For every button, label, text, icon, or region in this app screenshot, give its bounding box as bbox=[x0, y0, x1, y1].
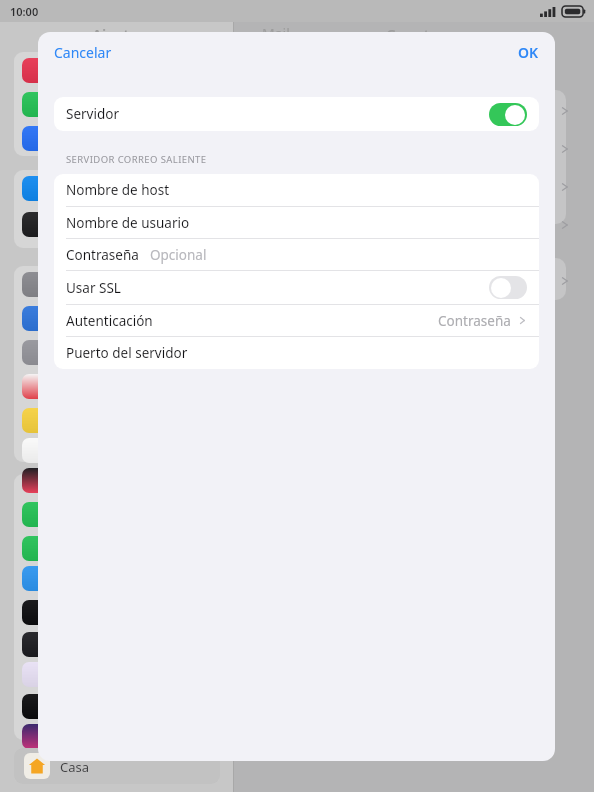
button[interactable]: Servidor bbox=[54, 97, 539, 131]
button[interactable]: Activado bbox=[489, 103, 527, 126]
staticText: Contraseña bbox=[66, 246, 139, 264]
button[interactable]: Nombre de host bbox=[54, 174, 539, 206]
staticText: Nombre de usuario bbox=[66, 214, 190, 232]
staticText: Puerto del servidor bbox=[66, 344, 188, 362]
button[interactable]: Nombre de usuario bbox=[54, 206, 539, 238]
staticText: Casa bbox=[60, 758, 90, 776]
staticText: OK bbox=[518, 43, 539, 62]
button[interactable]: Contraseña bbox=[54, 238, 539, 270]
staticText: Cancelar bbox=[54, 43, 112, 62]
button[interactable]: Usar SSL bbox=[54, 270, 539, 304]
button[interactable]: Desactivado bbox=[489, 276, 527, 299]
staticText: 10:00 bbox=[10, 4, 39, 19]
button[interactable]: Autenticación bbox=[54, 304, 539, 336]
staticText: Ajustes bbox=[92, 24, 146, 44]
staticText: Contraseña bbox=[438, 312, 511, 330]
button[interactable]: Puerto del servidor bbox=[54, 336, 539, 369]
staticText: Autenticación bbox=[66, 312, 153, 330]
staticText: Servidor bbox=[66, 105, 119, 123]
staticText: Usar SSL bbox=[66, 279, 121, 297]
staticText: SERVIDOR CORREO SALIENTE bbox=[66, 153, 207, 166]
staticText: Mail bbox=[262, 24, 290, 43]
button[interactable]: Cancelar bbox=[38, 37, 128, 68]
staticText: Nombre de host bbox=[66, 181, 170, 199]
staticText: Opcional bbox=[150, 246, 207, 264]
staticText: Cuenta bbox=[386, 24, 439, 44]
button[interactable]: OK bbox=[502, 37, 555, 68]
